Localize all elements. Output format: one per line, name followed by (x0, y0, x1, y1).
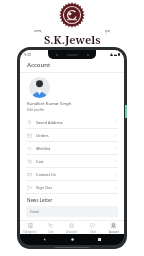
button[interactable]: Recents (96, 236, 103, 243)
staticText: News Letter (27, 197, 53, 203)
button[interactable]: Account (103, 221, 124, 234)
staticText: S.K.Jewels (44, 32, 101, 46)
staticText: Email (30, 209, 40, 214)
staticText: Cart (48, 230, 54, 234)
staticText: 9:30 (24, 52, 32, 57)
button[interactable]: Email (26, 206, 118, 217)
button[interactable]: Categories (20, 221, 40, 234)
staticText: Contact Us (36, 172, 56, 177)
button[interactable]: Chat (82, 221, 103, 234)
staticText: Sign Out (36, 185, 52, 190)
button[interactable]: Wishlist (20, 142, 124, 154)
staticText: Orders (36, 133, 49, 138)
button[interactable]: Discount (61, 221, 82, 234)
staticText: स्वागतम् (34, 29, 42, 32)
button[interactable]: Back (41, 236, 48, 243)
staticText: Cart (36, 159, 44, 164)
staticText: शुभम् (105, 29, 110, 32)
button[interactable]: Home (69, 236, 76, 243)
button[interactable]: Saved Address (20, 116, 124, 128)
staticText: Chat (90, 230, 96, 234)
staticText: Kunalkrit Kumar Singh (27, 101, 72, 107)
button[interactable]: Contact Us (20, 168, 124, 180)
button[interactable]: Sign Out (20, 181, 124, 193)
button[interactable]: Cart (20, 155, 124, 167)
button[interactable]: Edit profile (27, 107, 45, 112)
staticText: Wishlist (36, 146, 51, 151)
staticText: Discount (66, 230, 77, 234)
staticText: Account (109, 230, 119, 234)
staticText: Account (27, 61, 51, 69)
button[interactable]: Orders (20, 129, 124, 141)
button[interactable]: Cart (40, 221, 61, 234)
staticText: Saved Address (36, 120, 63, 125)
staticText: Categories (23, 230, 37, 234)
